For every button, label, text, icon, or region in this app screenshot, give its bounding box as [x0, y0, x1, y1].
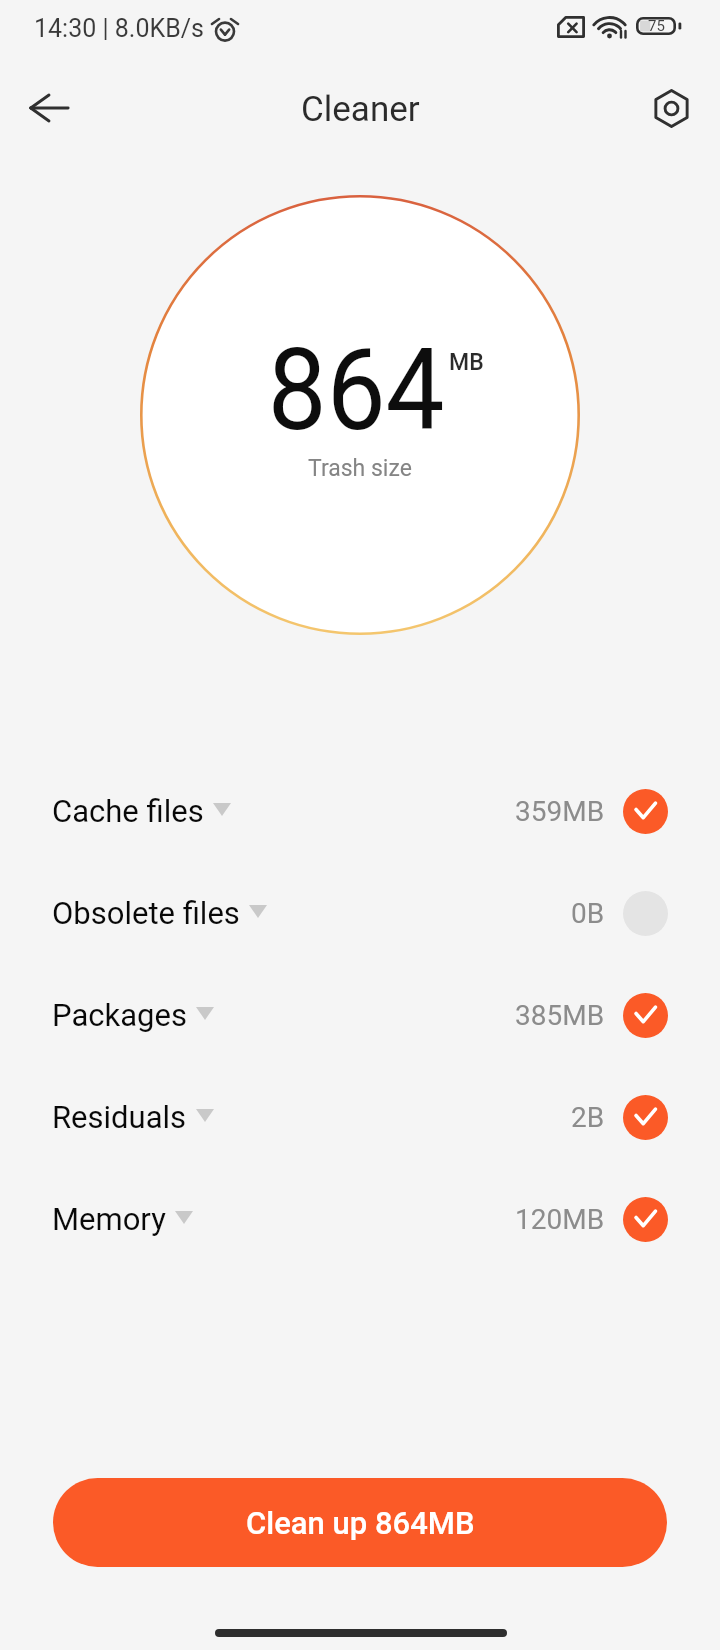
staticText: 2B [571, 1101, 605, 1134]
button[interactable]: Selected, Packages [623, 993, 668, 1038]
staticText: 0B [571, 897, 605, 930]
staticText: 359MB [515, 795, 605, 828]
button[interactable]: Selected, Residuals [623, 1095, 668, 1140]
button[interactable]: Not selected, Obsolete files [623, 891, 668, 936]
staticText: 864 [268, 323, 445, 457]
staticText: Clean up 864MB [246, 1505, 475, 1541]
staticText: 120MB [515, 1203, 605, 1236]
staticText: Cache files [52, 793, 204, 829]
staticText: 385MB [515, 999, 605, 1032]
button[interactable]: Selected, Memory [623, 1197, 668, 1242]
button[interactable]: Memory [0, 1168, 720, 1270]
staticText: 75 [648, 17, 665, 35]
button[interactable]: Settings [635, 72, 707, 144]
staticText: Obsolete files [52, 895, 240, 931]
button[interactable]: Cache files [0, 760, 720, 862]
staticText: 14:30 | 8.0KB/s [34, 14, 204, 43]
button[interactable]: Obsolete files [0, 862, 720, 964]
button[interactable]: Back [12, 71, 86, 145]
button[interactable]: Clean up 864MB [53, 1478, 667, 1567]
staticText: Cleaner [301, 89, 420, 130]
staticText: Trash size [308, 455, 412, 482]
staticText: Packages [52, 997, 187, 1033]
button[interactable]: Selected, Cache files [623, 789, 668, 834]
button[interactable]: Packages [0, 964, 720, 1066]
button[interactable]: Residuals [0, 1066, 720, 1168]
staticText: Residuals [52, 1099, 187, 1135]
staticText: MB [449, 349, 484, 376]
staticText: Memory [52, 1201, 166, 1237]
